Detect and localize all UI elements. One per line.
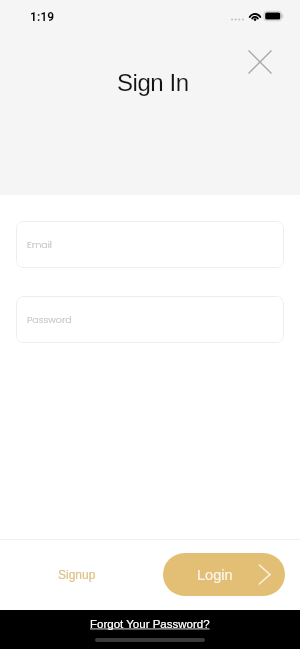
staticText: Sign In [117, 69, 189, 96]
button[interactable]: Password [16, 296, 284, 343]
button[interactable]: Login [163, 553, 285, 596]
button[interactable]: Email [16, 221, 284, 268]
staticText: 1:19 [30, 10, 55, 24]
button[interactable]: Forgot Your Password? [90, 618, 210, 631]
staticText: Forgot Your Password? [90, 618, 210, 631]
button[interactable]: Close [244, 46, 276, 78]
staticText: Signup [58, 568, 96, 581]
staticText: Login [197, 567, 233, 583]
button[interactable]: Signup [48, 560, 106, 589]
staticText: Email [27, 238, 52, 251]
staticText: Password [27, 313, 72, 326]
